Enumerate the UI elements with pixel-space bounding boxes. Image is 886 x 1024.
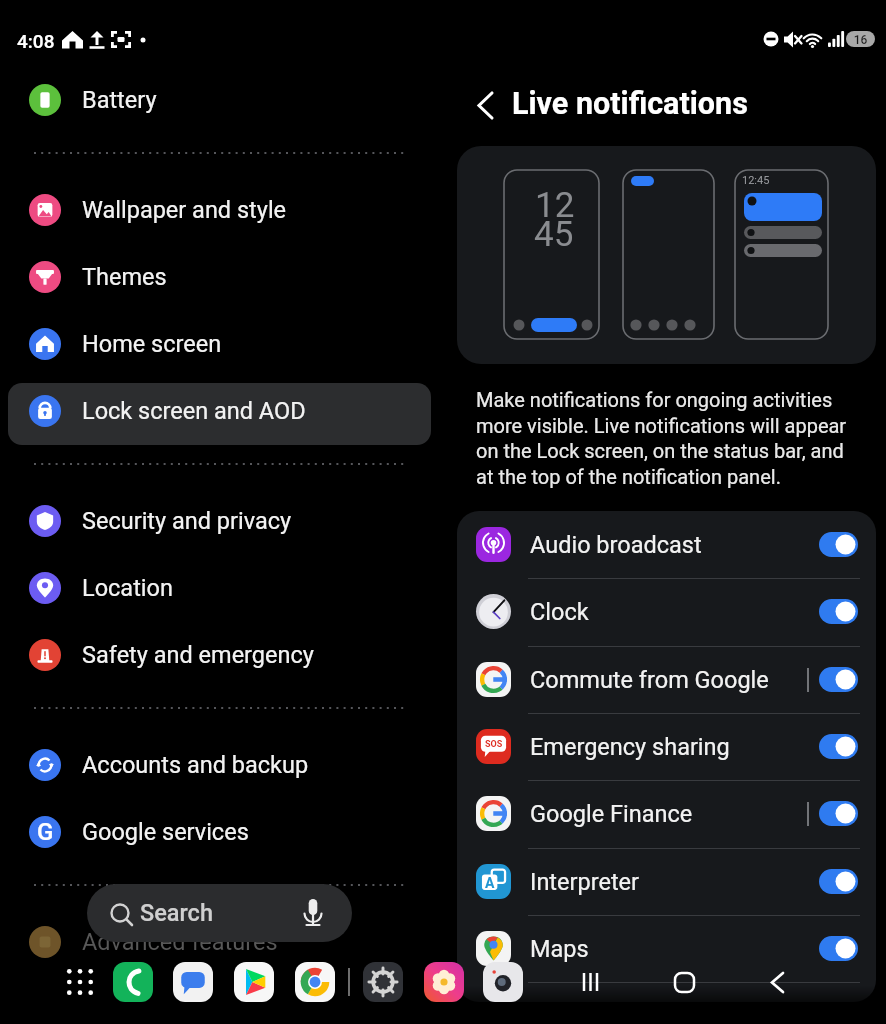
button[interactable]: Interpreter toggle (819, 869, 858, 894)
staticText: Home screen (82, 330, 222, 358)
staticText: Location (82, 574, 173, 602)
staticText: Audio broadcast (530, 531, 702, 559)
button[interactable]: Accounts and backup (0, 731, 443, 798)
staticText: A (485, 875, 495, 891)
button[interactable]: Lock screen and AOD (0, 377, 443, 444)
button[interactable]: Emergency sharing toggle (819, 734, 858, 759)
staticText: Emergency sharing (530, 733, 730, 761)
button[interactable]: Messages (172, 961, 214, 1003)
button[interactable]: Apps (59, 961, 101, 1003)
staticText: Interpreter (530, 868, 639, 896)
button[interactable]: Maps toggle (819, 936, 858, 961)
button[interactable]: Clock (457, 578, 876, 645)
staticText: more visible. Live notifications will ap… (476, 414, 847, 437)
staticText: 4:08 (17, 30, 55, 52)
button[interactable]: Clock toggle (819, 599, 858, 624)
button[interactable]: Maps (457, 915, 876, 982)
button[interactable]: Commute from Google (457, 646, 876, 713)
staticText: Advanced features (82, 928, 278, 956)
staticText: Google services (82, 818, 249, 846)
staticText: Lock screen and AOD (82, 397, 306, 425)
button[interactable]: Themes (0, 243, 443, 310)
staticText: Themes (82, 263, 167, 291)
staticText: Make notifications for ongoing activitie… (476, 388, 833, 411)
button[interactable]: Chrome (294, 961, 336, 1003)
staticText: SOS (485, 739, 503, 750)
button[interactable]: Gallery (423, 961, 465, 1003)
staticText: Maps (530, 935, 589, 963)
button[interactable]: Play Store (233, 961, 275, 1003)
button[interactable]: Google Finance toggle (819, 801, 858, 826)
button[interactable]: Phone (112, 961, 154, 1003)
staticText: Wallpaper and style (82, 196, 287, 224)
button[interactable]: Back (754, 959, 802, 1007)
button[interactable]: A (457, 848, 876, 915)
staticText: 12:45 (742, 174, 770, 187)
staticText: G (37, 818, 54, 846)
staticText: Accounts and backup (82, 751, 309, 779)
button[interactable]: Google Finance (457, 780, 876, 847)
staticText: Commute from Google (530, 666, 769, 694)
button[interactable]: Battery (0, 66, 443, 133)
staticText: Google Finance (530, 800, 693, 828)
button[interactable]: G (0, 798, 443, 865)
staticText: Live notifications (512, 86, 748, 122)
staticText: 12 (535, 185, 575, 226)
button[interactable]: Home screen (0, 310, 443, 377)
button[interactable]: SOS (457, 713, 876, 780)
staticText: Security and privacy (82, 507, 292, 535)
staticText: on the Lock screen, on the status bar, a… (476, 439, 844, 462)
staticText: 16 (846, 33, 875, 47)
button[interactable]: Search (87, 884, 352, 942)
button[interactable]: Safety and emergency (0, 621, 443, 688)
button[interactable]: Audio broadcast (457, 511, 876, 578)
button[interactable]: Security and privacy (0, 487, 443, 554)
button[interactable]: Audio broadcast toggle (819, 532, 858, 557)
staticText: Battery (82, 86, 157, 114)
staticText: 45 (534, 214, 574, 255)
staticText: Search (140, 899, 213, 927)
button[interactable]: Advanced features (0, 908, 443, 975)
button[interactable]: Location (0, 554, 443, 621)
button[interactable]: Settings (362, 961, 404, 1003)
staticText: at the top of the notification panel. (476, 465, 781, 488)
button[interactable]: Recent apps (568, 959, 616, 1007)
staticText: Clock (530, 598, 589, 626)
button[interactable]: Home (661, 959, 709, 1007)
button[interactable]: Commute from Google toggle (819, 667, 858, 692)
staticText: Safety and emergency (82, 641, 314, 669)
button[interactable]: Camera (482, 961, 524, 1003)
button[interactable]: Back (464, 85, 508, 129)
button[interactable]: Wallpaper and style (0, 176, 443, 243)
